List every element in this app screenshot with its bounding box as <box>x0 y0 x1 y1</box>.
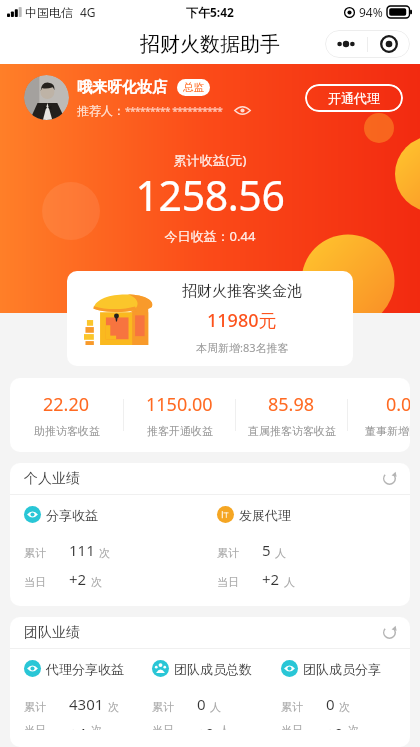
staticText: 人 <box>210 700 221 714</box>
button[interactable]: More options and close mini program <box>325 30 410 58</box>
button[interactable]: 代理分享收益 <box>24 660 152 730</box>
button[interactable]: Refresh <box>381 624 398 641</box>
staticText: ********* ********** <box>125 104 223 118</box>
staticText: 总监 <box>183 81 204 94</box>
staticText: 0.00 <box>386 392 410 417</box>
staticText: 今日收益：0.44 <box>0 227 420 245</box>
button[interactable]: Show referrer <box>234 105 251 116</box>
button[interactable]: 发展代理 <box>217 506 410 589</box>
staticText: 次 <box>348 723 359 730</box>
staticText: 94% <box>359 4 383 20</box>
staticText: 累计 <box>217 546 239 560</box>
staticText: 当日 <box>217 575 239 589</box>
staticText: 人 <box>284 575 295 589</box>
staticText: 中国电信 <box>25 5 73 20</box>
staticText: 次 <box>91 575 102 589</box>
button[interactable]: 85.98 <box>236 378 347 452</box>
staticText: 哦来呀化妆店 <box>77 78 167 97</box>
staticText: 1150.00 <box>146 392 213 417</box>
button[interactable]: 0.00 <box>348 378 410 452</box>
button[interactable]: 22.20 <box>10 378 123 452</box>
staticText: 开通代理 <box>328 90 380 106</box>
staticText: 累计 <box>24 546 46 560</box>
staticText: 分享收益 <box>46 507 98 523</box>
button[interactable]: 团队成员分享 <box>281 660 410 730</box>
staticText: 5 <box>262 540 271 560</box>
staticText: 111 <box>69 540 95 560</box>
staticText: 次 <box>91 723 102 730</box>
staticText: +2 <box>69 569 87 589</box>
button[interactable]: Profile avatar <box>24 75 69 120</box>
staticText: 1258.56 <box>0 167 420 223</box>
staticText: 董事新增队收益 <box>365 424 410 438</box>
staticText: 当日 <box>281 723 303 730</box>
staticText: 次 <box>108 700 119 714</box>
staticText: 代理分享收益 <box>46 661 124 677</box>
staticText: 次 <box>99 546 110 560</box>
staticText: 助推访客收益 <box>34 424 100 438</box>
staticText: 招财火数据助手 <box>140 32 280 57</box>
button[interactable]: 分享收益 <box>24 506 217 589</box>
button[interactable]: 招财火推客奖金池 <box>67 271 353 366</box>
staticText: 团队成员总数 <box>174 661 252 677</box>
staticText: 直属推客访客收益 <box>248 424 336 438</box>
staticText: 推荐人： <box>77 103 125 118</box>
staticText: 本周新增:83名推客 <box>196 340 289 355</box>
staticText: 次 <box>339 700 350 714</box>
staticText: 招财火推客奖金池 <box>182 282 302 301</box>
staticText: 推客开通收益 <box>147 424 213 438</box>
staticText: 11980元 <box>207 308 277 333</box>
staticText: 下午5:42 <box>186 4 234 20</box>
button[interactable]: 1150.00 <box>124 378 235 452</box>
staticText: 0 <box>326 694 335 714</box>
button[interactable]: 团队成员总数 <box>152 660 281 730</box>
staticText: 85.98 <box>268 392 315 417</box>
staticText: 0 <box>197 694 206 714</box>
staticText: 累计 <box>152 700 174 714</box>
staticText: 22.20 <box>43 392 90 417</box>
staticText: +4 <box>69 723 87 730</box>
button[interactable]: 开通代理 <box>305 84 403 112</box>
staticText: 人 <box>275 546 286 560</box>
staticText: 当日 <box>24 575 46 589</box>
staticText: +0 <box>326 723 344 730</box>
staticText: 团队业绩 <box>24 624 80 642</box>
staticText: +0 <box>197 723 215 730</box>
staticText: 4G <box>80 4 96 20</box>
staticText: 当日 <box>24 723 46 730</box>
staticText: 累计收益(元) <box>0 151 420 169</box>
staticText: 发展代理 <box>239 507 291 523</box>
staticText: 4301 <box>69 694 104 714</box>
staticText: 个人业绩 <box>24 470 80 488</box>
staticText: 累计 <box>24 700 46 714</box>
staticText: 人 <box>219 723 230 730</box>
staticText: 团队成员分享 <box>303 661 381 677</box>
staticText: 累计 <box>281 700 303 714</box>
staticText: 当日 <box>152 723 174 730</box>
button[interactable]: Refresh <box>381 470 398 487</box>
staticText: +2 <box>262 569 280 589</box>
